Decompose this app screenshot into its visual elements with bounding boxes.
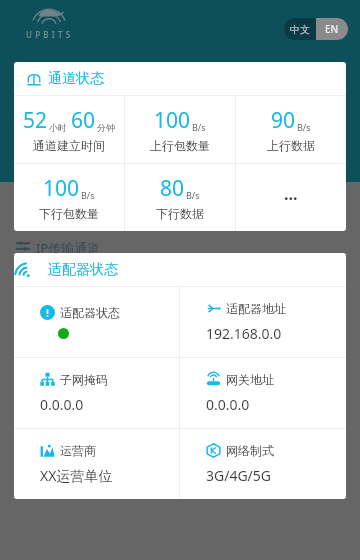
staticText: 适配器状态	[48, 261, 118, 279]
button[interactable]: 网络制式	[206, 429, 346, 499]
staticText: B/s	[297, 121, 311, 133]
button[interactable]: 适配器地址	[206, 287, 346, 357]
button[interactable]: 子网掩码	[40, 358, 179, 428]
staticText: 上行包数量	[150, 138, 210, 153]
staticText: 运营商	[60, 443, 96, 458]
staticText: 3G/4G/5G	[206, 466, 272, 485]
staticText: 90	[271, 106, 296, 135]
staticText: 通道建立时间	[33, 138, 105, 153]
staticText: ···	[284, 187, 298, 209]
button[interactable]: 90	[236, 96, 346, 163]
staticText: 80	[160, 174, 185, 203]
staticText: 网络制式	[226, 443, 274, 458]
button[interactable]: ···	[236, 164, 346, 231]
button[interactable]: 运营商	[40, 429, 179, 499]
staticText: 下行数据	[156, 206, 204, 221]
staticText: 60	[71, 106, 96, 135]
staticText: 适配器状态	[60, 305, 120, 320]
staticText: 下行包数量	[39, 206, 99, 221]
staticText: 0.0.0.0	[206, 395, 250, 414]
button[interactable]: 网关地址	[206, 358, 346, 428]
staticText: IP传输通道	[36, 239, 101, 253]
staticText: 通道状态	[48, 70, 104, 88]
staticText: 小时	[49, 122, 67, 133]
staticText: EN	[325, 22, 339, 36]
button[interactable]: 适配器状态	[40, 287, 179, 357]
staticText: B/s	[192, 121, 206, 133]
staticText: 0.0.0.0	[40, 395, 84, 414]
staticText: 适配器地址	[226, 301, 286, 316]
button[interactable]: 100	[125, 96, 235, 163]
button[interactable]: EN	[316, 18, 348, 40]
staticText: XX运营单位	[40, 466, 113, 485]
staticText: 中文	[290, 23, 310, 36]
staticText: B/s	[81, 189, 95, 201]
staticText: 上行数据	[267, 138, 315, 153]
button[interactable]: 52	[14, 96, 124, 163]
staticText: U P B I T S	[26, 29, 71, 40]
button[interactable]: 80	[125, 164, 235, 231]
staticText: 100	[154, 106, 191, 135]
staticText: 网关地址	[226, 372, 274, 387]
staticText: 52	[23, 106, 48, 135]
staticText: 192.168.0.0	[206, 324, 282, 343]
button[interactable]: 100	[14, 164, 124, 231]
staticText: B/s	[186, 189, 200, 201]
staticText: 子网掩码	[60, 372, 108, 387]
staticText: 100	[43, 174, 80, 203]
button[interactable]: 中文	[284, 18, 316, 40]
staticText: 分钟	[97, 122, 115, 133]
